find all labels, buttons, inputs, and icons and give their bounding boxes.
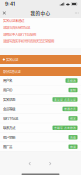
staticText: 去填写 点击修改 — [54, 126, 76, 130]
staticText: 账户余额 — [3, 135, 15, 140]
button[interactable]: More options — [72, 8, 81, 18]
button[interactable]: 普通会员 — [62, 107, 77, 111]
staticText: 复制 — [70, 88, 76, 92]
staticText: 绑定 — [70, 116, 76, 120]
button[interactable]: Close — [0, 8, 9, 18]
staticText: 普通会员 — [64, 107, 76, 111]
staticText: 请绑定本人银行卡后使用 — [3, 32, 36, 37]
staticText: 实名认证 — [6, 57, 18, 62]
staticText: 实名状态 — [3, 97, 15, 102]
button[interactable]: 绑定 — [68, 116, 77, 121]
staticText: 用户名 — [3, 78, 12, 83]
button[interactable]: 充值 — [68, 135, 77, 139]
button[interactable]: 申请 — [68, 144, 77, 149]
button[interactable]: 身份信息认证 — [0, 67, 81, 76]
button[interactable]: Next page — [47, 160, 54, 167]
button[interactable]: Previous page — [27, 160, 33, 167]
staticText: 申请 — [70, 145, 76, 149]
button[interactable]: 未认证 点击认证 — [52, 97, 77, 102]
staticText: 请填写真实手机号码否则无法正常使用 — [3, 38, 54, 43]
button[interactable]: 实名认证 — [0, 55, 81, 64]
staticText: 我的中心 — [30, 10, 50, 16]
staticText: 实名认证未通过 — [3, 18, 24, 23]
button[interactable]: 复制 — [68, 88, 77, 92]
staticText: 请填写真实身份信息 — [3, 25, 30, 30]
staticText: 用户ID — [3, 87, 12, 92]
button[interactable]: 去修改 — [65, 78, 77, 83]
staticText: 去修改 — [67, 78, 76, 83]
staticText: 推广员 — [3, 144, 12, 149]
staticText: 9:41 — [5, 1, 15, 7]
button[interactable]: 去填写 点击修改 — [52, 126, 77, 130]
staticText: 充值 — [70, 135, 76, 139]
staticText: 身份信息认证 — [2, 69, 20, 74]
staticText: 银行卡信息 — [3, 116, 18, 121]
staticText: 联系方式 — [3, 125, 15, 130]
staticText: 会员等级 — [3, 106, 15, 111]
staticText: 未认证 点击认证 — [54, 97, 76, 101]
